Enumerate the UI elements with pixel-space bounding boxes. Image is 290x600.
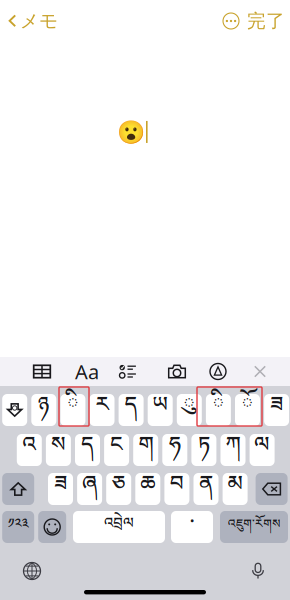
button[interactable]: ང [104,434,129,466]
staticText: ཞ [82,459,97,519]
button[interactable]: Next keyboard [14,558,50,584]
button[interactable]: ན [193,473,218,505]
staticText: ཟ [270,380,283,440]
button[interactable]: Checklist [113,357,143,386]
button[interactable]: メモ [0,0,64,42]
button[interactable]: ཉ [31,394,56,426]
button[interactable]: Table [27,357,57,386]
staticText: ༡༢༣ [8,508,29,546]
button[interactable]: འཇུག་རོགས [220,511,288,543]
button[interactable]: ི [60,394,85,426]
staticText: ས [51,420,66,480]
button[interactable]: · [171,511,213,543]
button[interactable]: ི [206,394,231,426]
button[interactable]: ཟ [264,394,289,426]
button[interactable]: Shift down [2,394,27,426]
staticText: ི [212,380,224,440]
button[interactable]: Delete [256,473,288,505]
button[interactable]: འ [17,434,42,466]
staticText: ག [138,420,153,480]
button[interactable]: ུ [177,394,202,426]
staticText: ལ [254,420,270,480]
button[interactable]: ར [89,394,114,426]
button[interactable]: More [217,0,245,42]
button[interactable]: ཀ [220,434,245,466]
staticText: ི [67,380,79,440]
staticText: メモ [20,9,58,32]
button[interactable]: ཟ [48,473,73,505]
button[interactable]: ད [119,394,144,426]
button[interactable]: 完了 [246,0,286,42]
button[interactable]: ཞ [77,473,102,505]
button[interactable]: Dictate [240,558,276,584]
button[interactable]: ཆ [135,473,160,505]
button[interactable]: ༡༢༣ [2,511,34,543]
button[interactable]: ལ [250,434,275,466]
staticText: འ [22,420,36,480]
button[interactable]: ཅ [106,473,131,505]
button[interactable]: ོ [235,394,260,426]
button[interactable]: Emoji [38,511,66,543]
button[interactable]: ས [46,434,71,466]
staticText: ཏ [198,420,210,480]
staticText: Aa [75,358,99,385]
staticText: བ [170,459,184,519]
button[interactable]: ཡ [148,394,173,426]
staticText: ོ [241,380,253,440]
button[interactable]: འབྲེལ [73,511,165,543]
button[interactable]: ཧ [162,434,187,466]
button[interactable]: ད [75,434,100,466]
staticText: འབྲེལ [104,506,134,548]
staticText: ཀ [225,420,240,480]
button[interactable]: མ [223,473,248,505]
staticText: ད [81,420,94,480]
button[interactable]: ཏ [191,434,216,466]
staticText: ཆ [140,459,155,519]
staticText: 😮 [117,119,145,145]
staticText: མ [228,459,243,519]
button[interactable]: Close [246,357,274,386]
staticText: ང [110,420,123,480]
staticText: ན [199,459,213,519]
button[interactable]: བ [164,473,189,505]
staticText: འཇུག་རོགས [228,510,280,544]
staticText: ཉ [38,380,50,440]
staticText: ཡ [152,380,168,440]
button[interactable]: Aa [72,357,102,386]
staticText: · [189,499,194,555]
button[interactable]: Shift [2,473,34,505]
staticText: ཧ [169,420,181,480]
staticText: ད [125,380,138,440]
staticText: ཟ [54,459,67,519]
staticText: 完了 [247,9,285,32]
staticText: ར [95,380,108,440]
staticText: ཅ [112,459,126,519]
button[interactable]: Camera [162,357,192,386]
button[interactable]: Markup [203,357,233,386]
button[interactable]: ག [133,434,158,466]
staticText: ུ [183,380,195,440]
